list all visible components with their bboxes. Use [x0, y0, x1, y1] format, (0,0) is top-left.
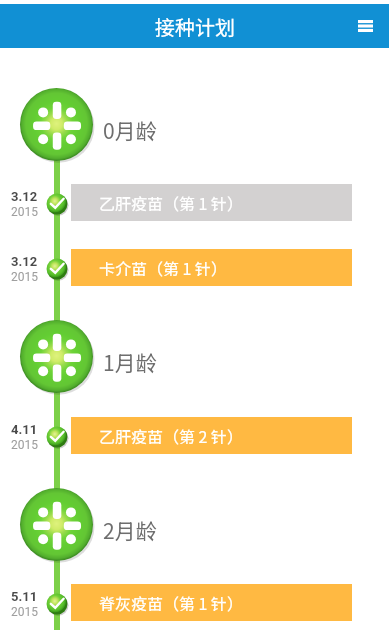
button[interactable]: 1月龄: [20, 320, 93, 393]
staticText: 接种计划: [155, 12, 235, 41]
staticText: 2015: [11, 605, 38, 619]
staticText: 脊灰疫苗（第 1 针）: [99, 591, 244, 614]
button[interactable]: 卡介苗（第 1 针）: [71, 249, 352, 286]
staticText: 1月龄: [103, 347, 157, 377]
button[interactable]: 乙肝疫苗（第 1 针）: [71, 184, 352, 221]
staticText: 3.12: [11, 189, 38, 204]
staticText: 卡介苗（第 1 针）: [99, 256, 228, 279]
staticText: 乙肝疫苗（第 2 针）: [99, 424, 244, 447]
staticText: 2015: [11, 438, 38, 452]
staticText: 0月龄: [103, 115, 157, 145]
staticText: 5.11: [11, 589, 38, 604]
staticText: 3.12: [11, 254, 38, 269]
button[interactable]: 乙肝疫苗（第 2 针）: [71, 417, 352, 454]
staticText: 4.11: [11, 422, 38, 437]
button[interactable]: 脊灰疫苗（第 1 针）: [71, 584, 352, 621]
staticText: 乙肝疫苗（第 1 针）: [99, 191, 244, 214]
button[interactable]: 0月龄: [20, 88, 93, 161]
staticText: 2015: [11, 270, 38, 284]
button[interactable]: 2月龄: [20, 488, 93, 561]
staticText: 2015: [11, 205, 38, 219]
staticText: 2月龄: [103, 515, 157, 545]
button[interactable]: Menu: [352, 13, 378, 39]
